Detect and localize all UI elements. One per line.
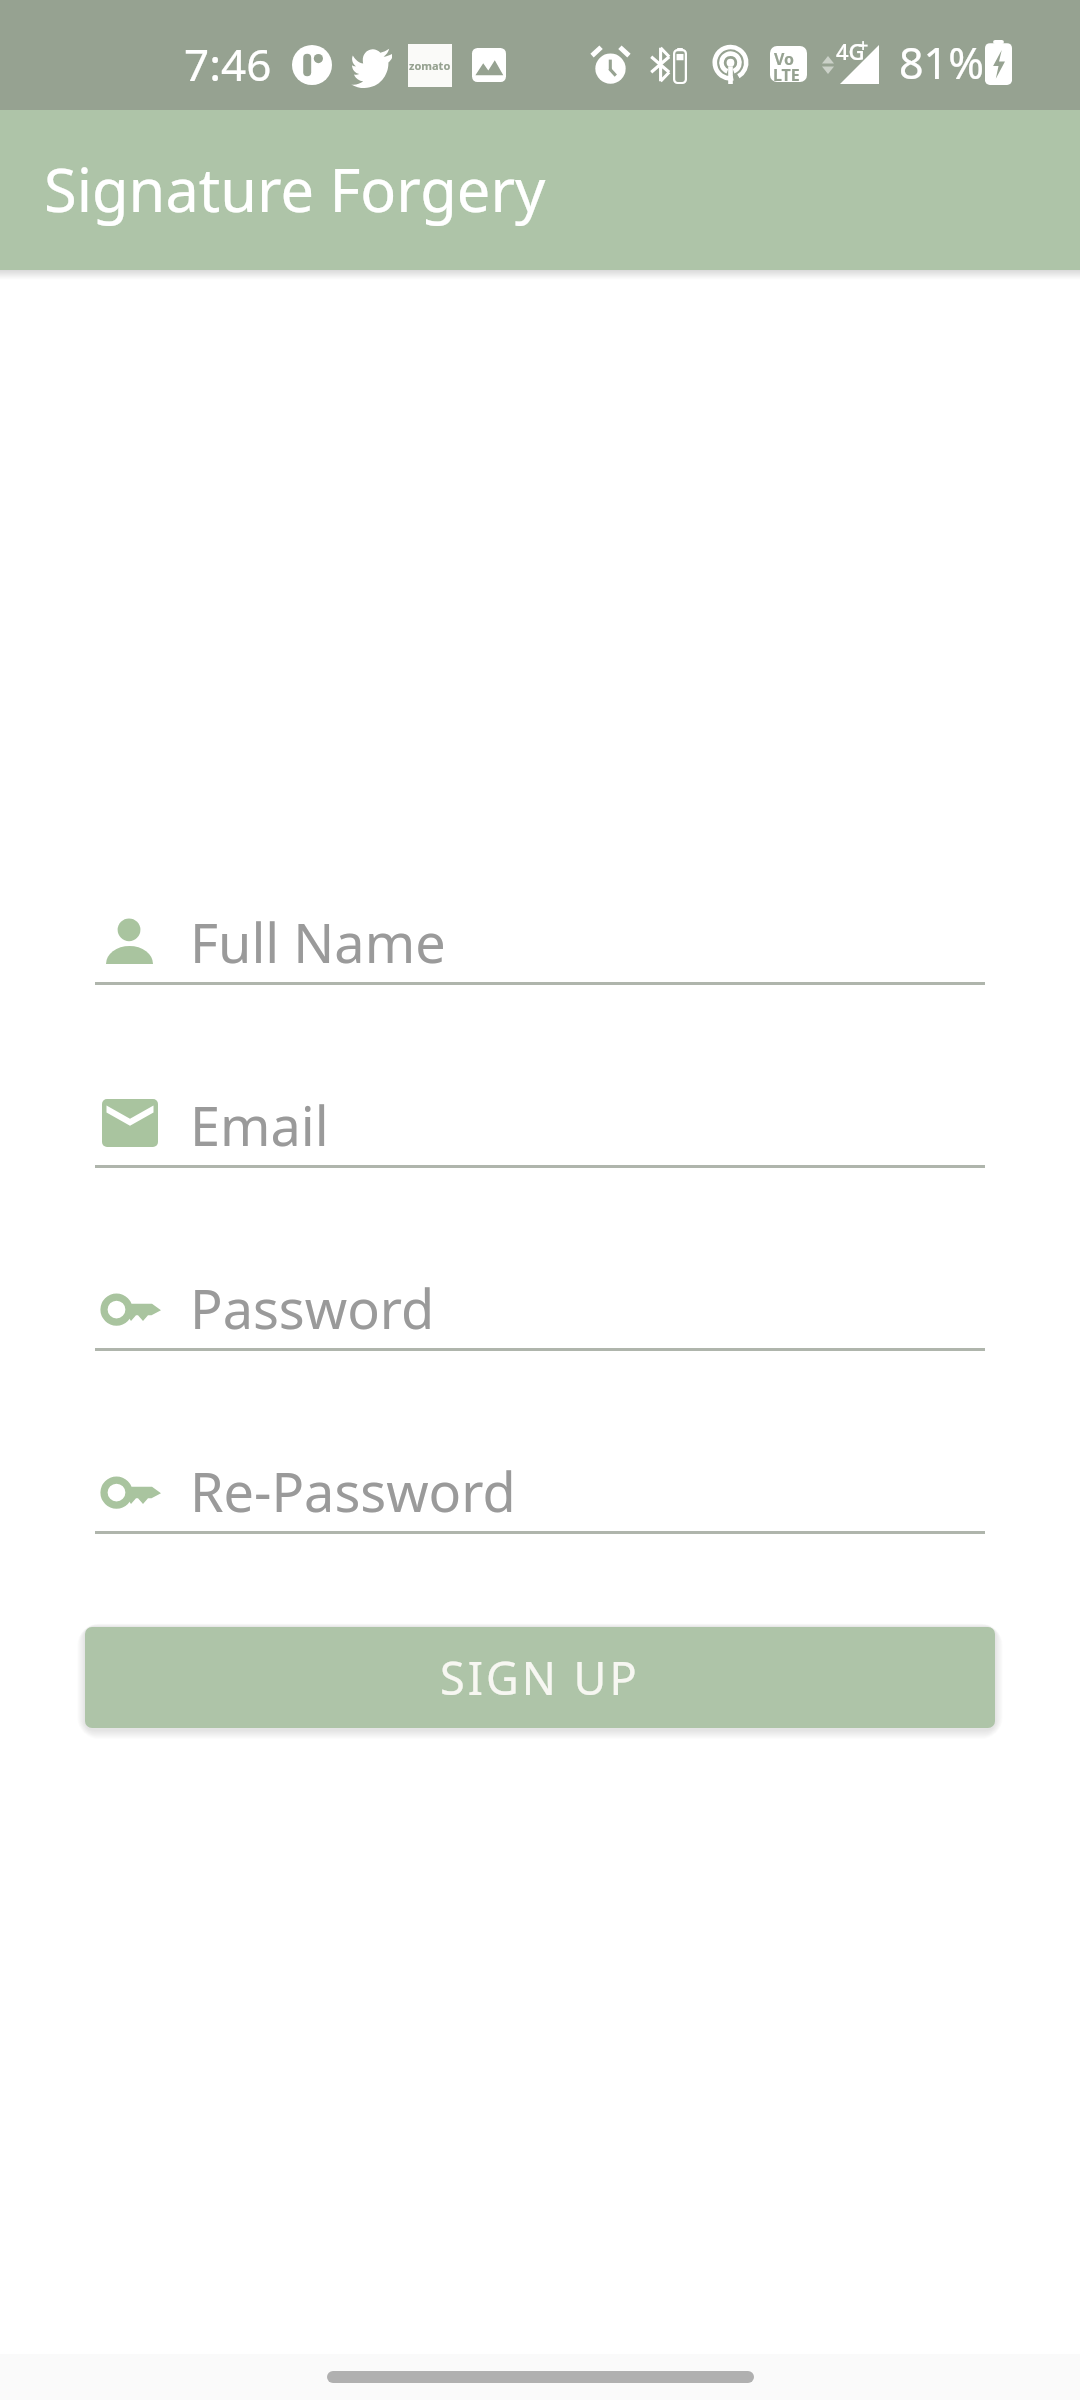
staticText: 4G (836, 36, 865, 66)
staticText: Vo (774, 48, 795, 70)
button[interactable]: Email (95, 1065, 985, 1168)
staticText: Re-Password (190, 1454, 516, 1528)
staticText: + (858, 33, 869, 58)
staticText: Email (190, 1088, 329, 1162)
staticText: SIGN UP (440, 1647, 640, 1708)
button[interactable]: Re-Password (95, 1431, 985, 1534)
button[interactable]: SIGN UP (85, 1627, 995, 1728)
staticText: Password (190, 1271, 435, 1345)
button[interactable]: Full Name (95, 882, 985, 985)
staticText: Signature Forgery (44, 148, 546, 229)
staticText: 7:46 (184, 34, 272, 94)
other: Home gesture bar (327, 2371, 754, 2383)
staticText: 81% (899, 33, 984, 92)
staticText: zomato (409, 58, 451, 73)
button[interactable]: Password (95, 1248, 985, 1351)
staticText: Full Name (190, 905, 446, 979)
staticText: LTE (773, 64, 800, 82)
